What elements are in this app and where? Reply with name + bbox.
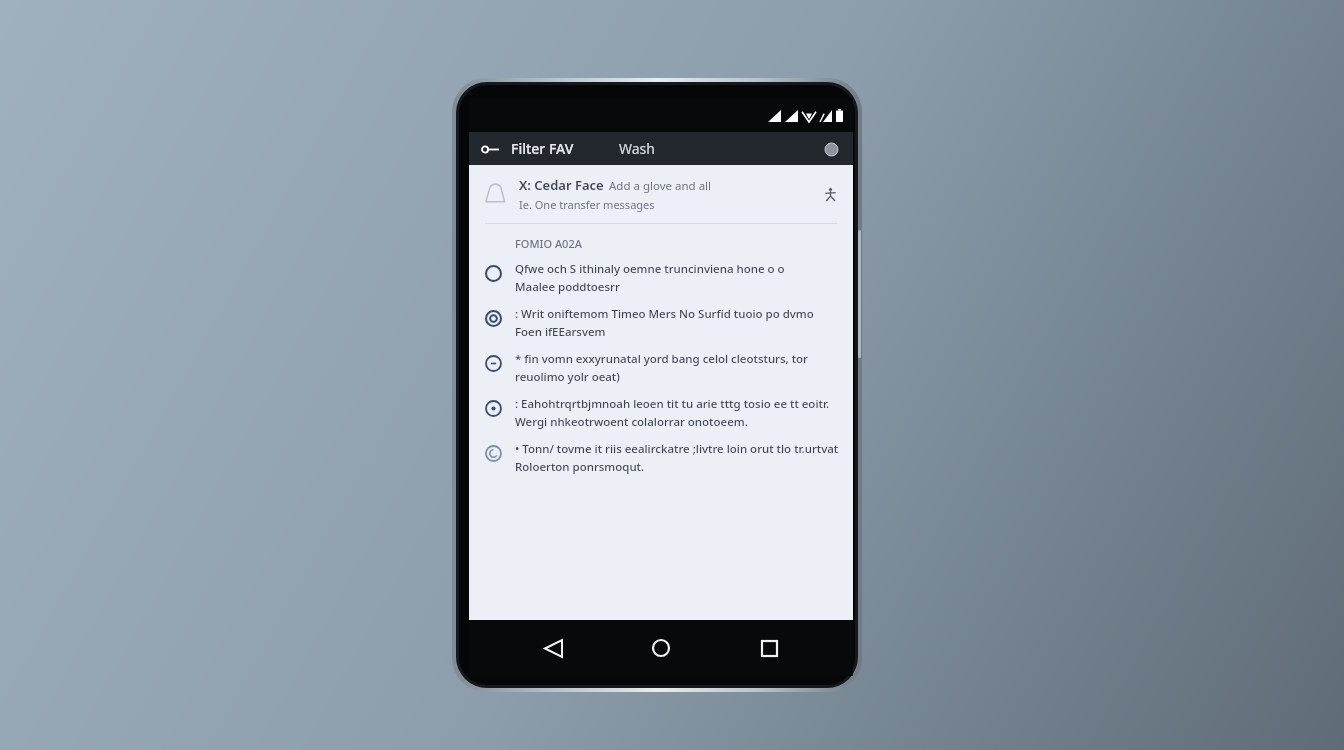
button[interactable]: : Eahohtrqrtbjmnoah leoen tit tu arie tt… (469, 392, 853, 437)
staticText: • Tonn/ tovme it riis eealirckatre ;livt… (515, 441, 839, 457)
staticText: : Eahohtrqrtbjmnoah leoen tit tu arie tt… (515, 396, 830, 412)
button[interactable]: : Writ oniftemom Timeo Mers No Surfid tu… (469, 302, 853, 347)
staticText: Wash (619, 139, 655, 158)
button[interactable]: X: Cedar Face (469, 165, 853, 223)
staticText: * fin vomn exxyrunatal yord bang celol c… (515, 351, 808, 367)
button[interactable]: Back (529, 624, 577, 672)
staticText: X: Cedar Face (519, 176, 604, 194)
staticText: Roloerton ponrsmoqut. (515, 459, 645, 475)
staticText: Qfwe och S ithinaly oemne truncinviena h… (515, 261, 785, 277)
staticText: : Writ oniftemom Timeo Mers No Surfid tu… (515, 306, 814, 322)
staticText: Filter FAV (511, 139, 574, 158)
button[interactable]: • Tonn/ tovme it riis eealirckatre ;livt… (469, 437, 853, 482)
button[interactable]: Recent apps (745, 624, 793, 672)
staticText: Foen ifEEarsvem (515, 324, 606, 340)
staticText: Ie. One transfer messages (519, 197, 655, 212)
button[interactable]: Back (475, 134, 505, 164)
button[interactable]: More options (819, 137, 843, 161)
button[interactable]: Qfwe och S ithinaly oemne truncinviena h… (469, 257, 853, 302)
staticText: Maalee poddtoesrr (515, 279, 620, 295)
button[interactable]: Home (637, 624, 685, 672)
button[interactable]: * fin vomn exxyrunatal yord bang celol c… (469, 347, 853, 392)
staticText: Wergi nhkeotrwoent colalorrar onotoeem. (515, 414, 748, 430)
staticText: FOMIO A02A (515, 236, 582, 251)
staticText: Add a glove and all (609, 178, 712, 194)
staticText: reuolimo yolr oeat) (515, 369, 620, 385)
button[interactable]: Activity (817, 181, 843, 207)
